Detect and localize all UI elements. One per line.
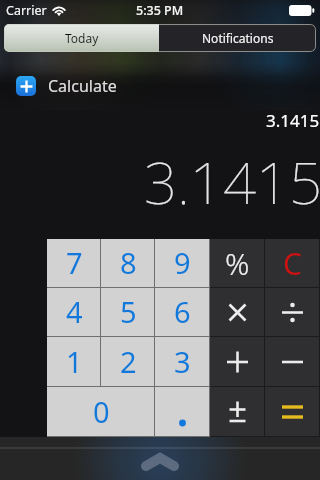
button[interactable]: 0: [47, 387, 155, 437]
staticText: 3: [174, 342, 191, 381]
staticText: Carrier: [6, 2, 47, 19]
button[interactable]: Equals: [265, 387, 320, 437]
staticText: Calculate: [48, 75, 117, 97]
staticText: C: [283, 243, 302, 284]
button[interactable]: Calculate: [16, 66, 320, 106]
staticText: 3.1415: [266, 109, 320, 129]
button[interactable]: Plus minus: [210, 387, 265, 437]
button[interactable]: [155, 387, 210, 437]
staticText: 3.1415: [144, 142, 320, 216]
button[interactable]: 4: [47, 288, 101, 337]
staticText: Notifications: [202, 30, 274, 46]
button[interactable]: Multiply: [210, 288, 265, 337]
button[interactable]: Notifications: [159, 24, 316, 52]
button[interactable]: Plus: [210, 337, 265, 387]
button[interactable]: 6: [155, 288, 210, 337]
button[interactable]: 9: [155, 239, 210, 288]
staticText: 2: [120, 342, 137, 381]
button[interactable]: Minus: [265, 337, 320, 387]
button[interactable]: 5: [101, 288, 155, 337]
button[interactable]: 3: [155, 337, 210, 387]
button[interactable]: C: [265, 239, 320, 288]
button[interactable]: 2: [101, 337, 155, 387]
button[interactable]: Divide: [265, 288, 320, 337]
staticText: 7: [66, 243, 83, 282]
staticText: 5:35 PM: [136, 2, 184, 19]
staticText: 6: [174, 292, 191, 331]
staticText: 9: [174, 243, 191, 282]
staticText: 8: [120, 243, 137, 282]
button[interactable]: Percent: [210, 239, 265, 288]
staticText: 4: [66, 292, 83, 331]
button[interactable]: 1: [47, 337, 101, 387]
staticText: Today: [65, 30, 99, 46]
button[interactable]: Close notification center: [0, 437, 320, 480]
button[interactable]: 7: [47, 239, 101, 288]
staticText: 1: [66, 342, 83, 381]
staticText: 5: [120, 292, 137, 331]
button[interactable]: Today: [4, 24, 159, 52]
staticText: 0: [93, 392, 110, 431]
staticText: %: [225, 243, 250, 284]
button[interactable]: 8: [101, 239, 155, 288]
